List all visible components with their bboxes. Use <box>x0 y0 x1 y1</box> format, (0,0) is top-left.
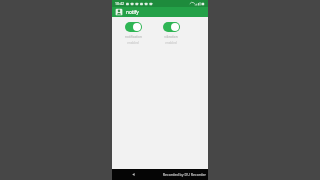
button[interactable]: notification <box>120 22 146 45</box>
button[interactable]: vibration <box>158 22 184 45</box>
button[interactable]: Back <box>130 171 137 178</box>
staticText: enabled <box>165 41 177 45</box>
staticText: notification <box>125 35 142 39</box>
staticText: enabled <box>127 41 139 45</box>
button[interactable]: Profile <box>115 8 123 16</box>
staticText: 10:42 <box>115 1 124 6</box>
staticText: Recorded by DU Recorder <box>162 172 206 177</box>
staticText: vibration <box>164 35 178 39</box>
staticText: notify <box>126 9 139 15</box>
